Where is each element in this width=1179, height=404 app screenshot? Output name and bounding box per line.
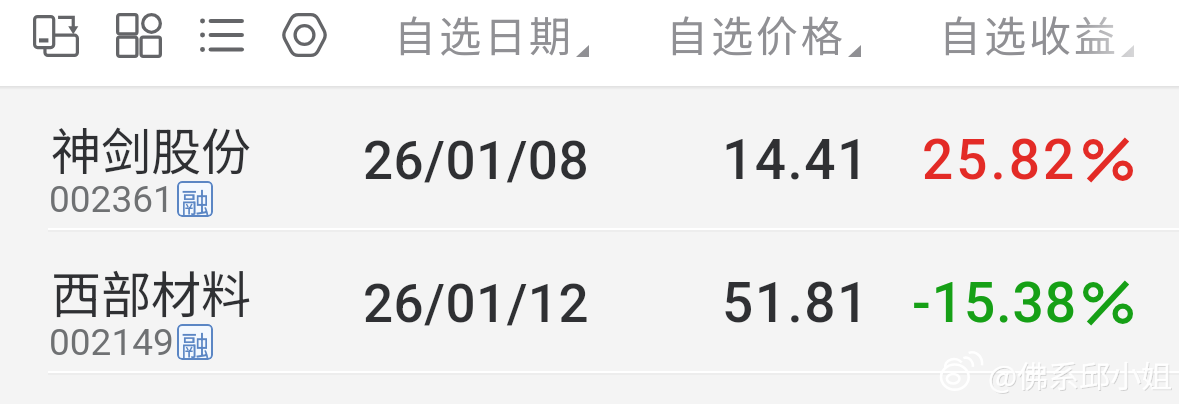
button[interactable]: 神剑股份: [0, 86, 1179, 229]
button[interactable]: Grid view: [102, 0, 176, 72]
button[interactable]: Settings: [267, 0, 342, 71]
staticText: @佛系邱小姐: [989, 353, 1174, 398]
button[interactable]: 西部材料: [0, 229, 1179, 372]
staticText: 神剑股份: [51, 112, 251, 184]
button[interactable]: List view: [185, 5, 257, 66]
button[interactable]: Import watchlist: [19, 1, 93, 71]
staticText: 002361: [49, 178, 174, 221]
button[interactable]: 自选收益: [932, 4, 1141, 82]
staticText: 西部材料: [51, 255, 251, 327]
staticText: 融: [181, 324, 210, 360]
staticText: 26/01/08: [363, 130, 590, 192]
staticText: 自选价格: [666, 3, 847, 64]
staticText: 融: [181, 181, 210, 217]
button[interactable]: 自选日期: [387, 4, 596, 82]
staticText: 自选收益: [939, 3, 1120, 64]
staticText: 002149: [49, 321, 174, 364]
staticText: 51.81: [722, 271, 870, 335]
staticText: -15.38: [912, 271, 1078, 335]
staticText: 25.82: [922, 128, 1078, 192]
staticText: 26/01/12: [363, 273, 590, 335]
staticText: 14.41: [722, 128, 870, 192]
staticText: 自选日期: [394, 3, 575, 64]
button[interactable]: 自选价格: [659, 4, 868, 82]
staticText: @佛系邱小姐: [988, 352, 1173, 397]
